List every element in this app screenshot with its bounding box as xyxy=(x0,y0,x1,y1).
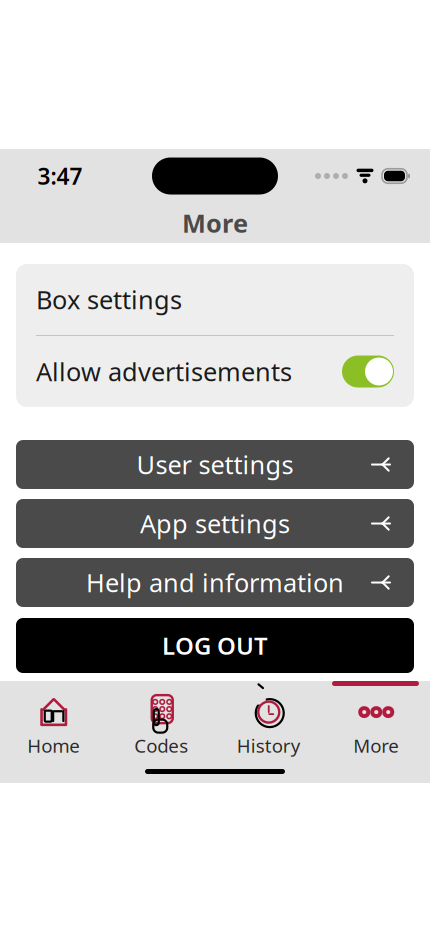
button[interactable]: User settings xyxy=(16,440,414,489)
button[interactable]: Home xyxy=(0,696,107,756)
button[interactable]: History xyxy=(215,696,322,756)
staticText: App settings xyxy=(140,507,290,540)
button[interactable]: Codes xyxy=(107,696,215,756)
staticText: More xyxy=(353,733,399,758)
button[interactable]: App settings xyxy=(16,499,414,548)
staticText: 3:47 xyxy=(37,161,82,191)
staticText: Box settings xyxy=(36,283,182,316)
button[interactable]: Help and information xyxy=(16,558,414,607)
button[interactable]: LOG OUT xyxy=(16,618,414,673)
staticText: More xyxy=(182,206,248,240)
button[interactable]: Box settings xyxy=(16,264,414,335)
button[interactable]: Allow advertisements xyxy=(16,336,414,407)
staticText: LOG OUT xyxy=(162,630,268,661)
staticText: History xyxy=(237,733,301,758)
staticText: Allow advertisements xyxy=(36,355,292,388)
staticText: Help and information xyxy=(86,566,344,599)
staticText: Home xyxy=(27,733,80,758)
staticText: User settings xyxy=(136,448,293,481)
staticText: Codes xyxy=(134,733,188,758)
button[interactable]: More xyxy=(322,696,430,756)
